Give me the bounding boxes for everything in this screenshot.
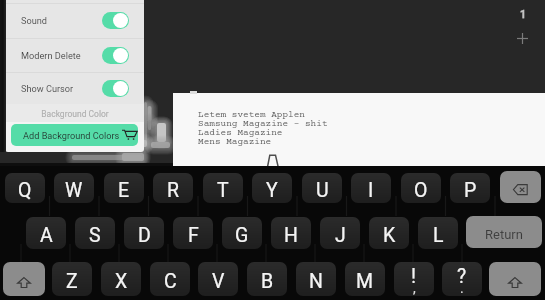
button[interactable]: Shift bbox=[3, 262, 45, 296]
button[interactable]: X bbox=[101, 262, 141, 296]
button[interactable]: Z bbox=[52, 262, 92, 296]
staticText: S bbox=[89, 224, 101, 247]
staticText: Return bbox=[485, 227, 523, 242]
button[interactable]: Add bbox=[508, 28, 536, 48]
staticText: Background Color bbox=[41, 109, 109, 119]
button[interactable]: Q bbox=[5, 173, 45, 203]
button[interactable]: K bbox=[369, 217, 409, 249]
staticText: , bbox=[413, 280, 416, 296]
button[interactable]: V bbox=[198, 262, 238, 296]
staticText: N bbox=[309, 270, 323, 293]
staticText: G bbox=[235, 224, 249, 247]
staticText: P bbox=[464, 179, 477, 202]
button[interactable]: 1 bbox=[511, 5, 535, 23]
button[interactable]: S bbox=[75, 217, 115, 249]
button[interactable]: Backspace bbox=[500, 171, 541, 203]
button[interactable]: C bbox=[150, 262, 190, 296]
staticText: O bbox=[414, 179, 428, 202]
staticText: T bbox=[217, 179, 229, 202]
staticText: A bbox=[40, 224, 53, 247]
button[interactable]: Y bbox=[252, 173, 292, 203]
staticText: Modern Delete bbox=[21, 50, 81, 61]
staticText: D bbox=[138, 224, 151, 247]
staticText: 1 bbox=[520, 8, 526, 20]
staticText: ? bbox=[457, 265, 467, 288]
button[interactable]: D bbox=[124, 217, 164, 249]
button[interactable]: Add Background Colors bbox=[11, 124, 138, 146]
staticText: Samsung Magazine - shit bbox=[198, 119, 328, 130]
staticText: R bbox=[167, 179, 180, 202]
staticText: E bbox=[118, 179, 130, 202]
staticText: L bbox=[433, 224, 444, 247]
button[interactable]: J bbox=[320, 217, 360, 249]
button[interactable]: M bbox=[345, 262, 385, 296]
staticText: Mens Magazine bbox=[198, 137, 272, 148]
staticText: Show Cursor bbox=[21, 83, 74, 94]
staticText: X bbox=[115, 270, 128, 293]
button[interactable]: L bbox=[418, 217, 458, 249]
staticText: Add Background Colors bbox=[23, 130, 120, 141]
button[interactable]: W bbox=[54, 173, 94, 203]
staticText: W bbox=[65, 179, 83, 202]
staticText: K bbox=[383, 224, 396, 247]
staticText: I bbox=[368, 179, 374, 202]
button[interactable]: E bbox=[104, 173, 144, 203]
button[interactable]: I bbox=[351, 173, 391, 203]
staticText: M bbox=[356, 270, 374, 293]
staticText: Y bbox=[266, 179, 278, 202]
button[interactable]: Modern Delete bbox=[5, 38, 144, 72]
button[interactable]: U bbox=[302, 173, 342, 203]
button[interactable]: ? bbox=[442, 262, 482, 296]
staticText: Letem svetem Applen bbox=[198, 110, 305, 121]
button[interactable]: T bbox=[203, 173, 243, 203]
staticText: B bbox=[261, 270, 274, 293]
button[interactable]: O bbox=[401, 173, 441, 203]
button[interactable]: ! bbox=[394, 262, 434, 296]
staticText: F bbox=[188, 224, 199, 247]
button[interactable]: G bbox=[222, 217, 262, 249]
button[interactable]: R bbox=[153, 173, 193, 203]
button[interactable]: P bbox=[450, 173, 490, 203]
staticText: U bbox=[316, 179, 329, 202]
button[interactable]: F bbox=[173, 217, 213, 249]
staticText: V bbox=[212, 270, 225, 293]
staticText: H bbox=[284, 224, 298, 247]
button[interactable]: N bbox=[296, 262, 336, 296]
button[interactable]: H bbox=[271, 217, 311, 249]
staticText: ! bbox=[411, 265, 417, 288]
button[interactable]: Show Cursor bbox=[5, 72, 144, 104]
staticText: J bbox=[335, 224, 346, 247]
staticText: C bbox=[164, 270, 177, 293]
staticText: . bbox=[460, 280, 464, 296]
staticText: Z bbox=[66, 270, 78, 293]
button[interactable]: Shift bbox=[489, 262, 541, 296]
staticText: Sound bbox=[21, 15, 48, 26]
button[interactable]: A bbox=[26, 217, 66, 249]
staticText: Ladies Magazine bbox=[198, 128, 283, 139]
button[interactable]: Sound bbox=[5, 3, 144, 38]
button[interactable]: Return bbox=[466, 216, 542, 248]
button[interactable]: B bbox=[247, 262, 287, 296]
staticText: Q bbox=[18, 179, 32, 202]
